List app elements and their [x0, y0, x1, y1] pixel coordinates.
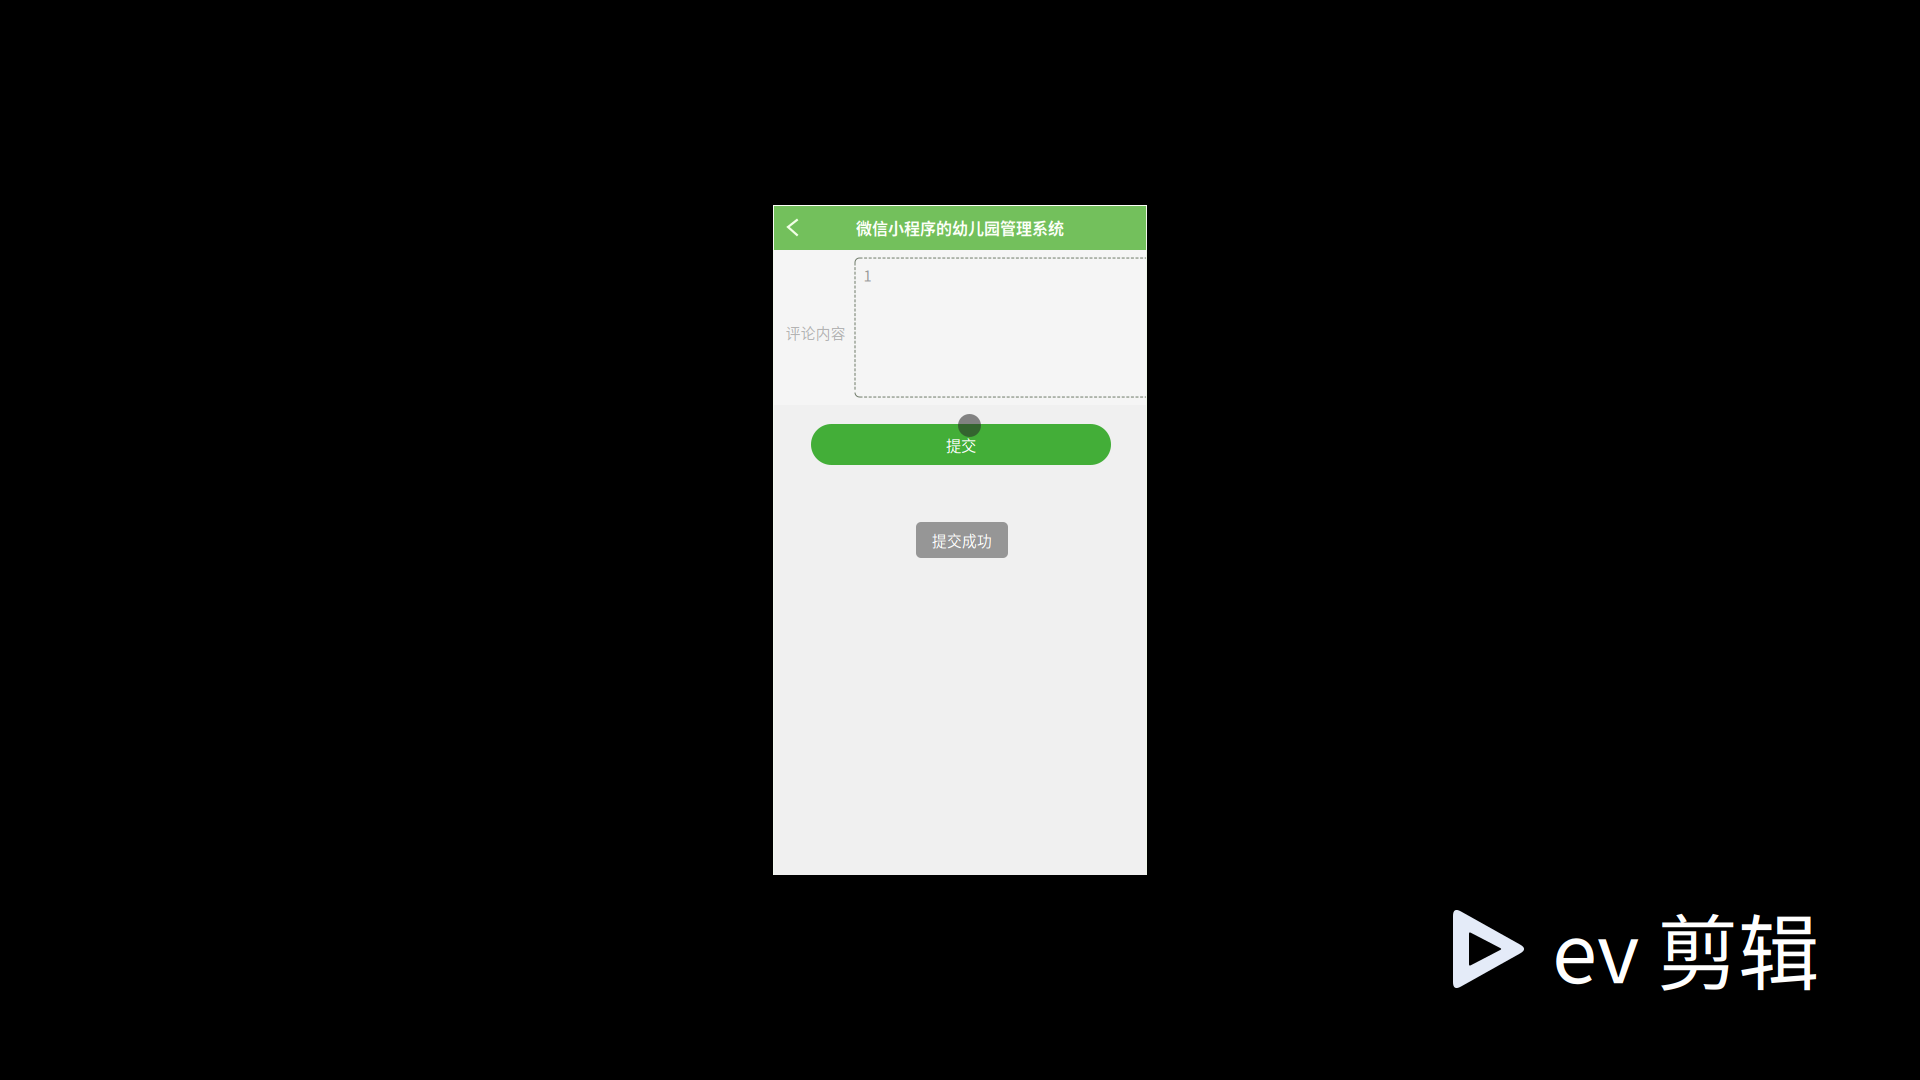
- staticText: 评论内容: [786, 322, 846, 343]
- staticText: 1: [863, 264, 871, 286]
- staticText: 微信小程序的幼儿园管理系统: [856, 216, 1064, 239]
- staticText: 提交: [946, 433, 976, 456]
- button[interactable]: Back: [773, 205, 815, 250]
- staticText: 提交成功: [932, 529, 992, 551]
- staticText: ev 剪辑: [1552, 889, 1819, 1007]
- button[interactable]: 提交: [811, 424, 1111, 465]
- button[interactable]: 1: [854, 257, 1147, 397]
